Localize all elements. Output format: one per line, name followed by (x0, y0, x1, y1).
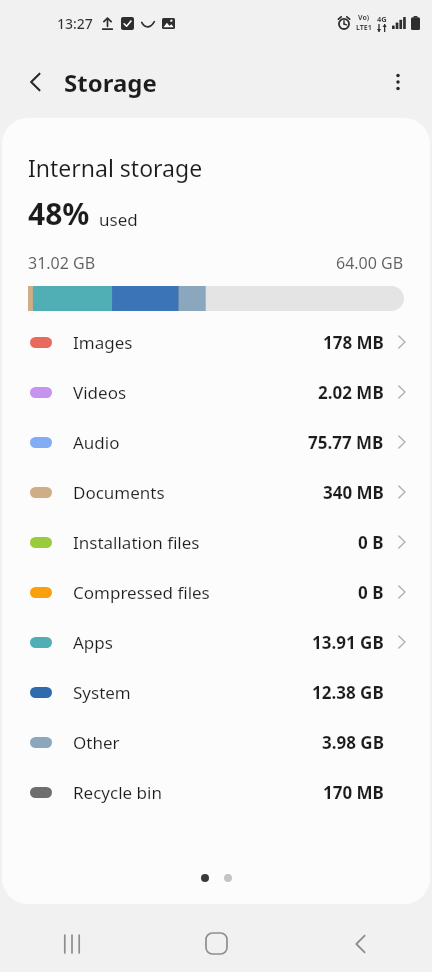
staticText: Images (73, 331, 133, 354)
staticText: 170 MB (323, 781, 384, 804)
button[interactable]: Recycle bin (2, 767, 430, 817)
staticText: Other (73, 731, 120, 754)
staticText: LTE1 (356, 23, 372, 33)
staticText: 0 B (358, 581, 384, 604)
staticText: 2.02 MB (318, 381, 384, 404)
button[interactable]: Images (2, 317, 430, 367)
staticText: Apps (73, 631, 113, 654)
staticText: 13:27 (57, 14, 93, 33)
button[interactable]: Back (288, 915, 432, 972)
button[interactable]: Other (2, 717, 430, 767)
staticText: 4G (377, 14, 387, 24)
staticText: used (99, 208, 138, 231)
staticText: Vo) (358, 13, 370, 23)
staticText: 75.77 MB (308, 431, 384, 454)
staticText: Compressed files (73, 581, 210, 604)
staticText: 3.98 GB (322, 731, 384, 754)
staticText: Videos (73, 381, 127, 404)
staticText: Storage (64, 66, 157, 99)
staticText: 12.38 GB (312, 681, 384, 704)
staticText: Installation files (73, 531, 200, 554)
staticText: Documents (73, 481, 165, 504)
staticText: 48% (28, 193, 90, 234)
staticText: 31.02 GB (28, 252, 96, 274)
staticText: Audio (73, 431, 120, 454)
staticText: System (73, 681, 131, 704)
button[interactable]: Audio (2, 417, 430, 467)
staticText: Internal storage (28, 152, 203, 183)
staticText: 13.91 GB (312, 631, 384, 654)
button[interactable]: Apps (2, 617, 430, 667)
button[interactable]: Installation files (2, 517, 430, 567)
staticText: Recycle bin (73, 781, 162, 804)
button[interactable]: More options (376, 60, 420, 104)
staticText: 340 MB (323, 481, 384, 504)
button[interactable]: Compressed files (2, 567, 430, 617)
button[interactable]: Home (144, 915, 288, 972)
button[interactable]: Navigate up (14, 60, 58, 104)
staticText: 178 MB (323, 331, 384, 354)
button[interactable]: Recent apps (0, 915, 144, 972)
button[interactable]: Videos (2, 367, 430, 417)
button[interactable]: Documents (2, 467, 430, 517)
staticText: 64.00 GB (336, 252, 404, 274)
staticText: 0 B (358, 531, 384, 554)
button[interactable]: System (2, 667, 430, 717)
